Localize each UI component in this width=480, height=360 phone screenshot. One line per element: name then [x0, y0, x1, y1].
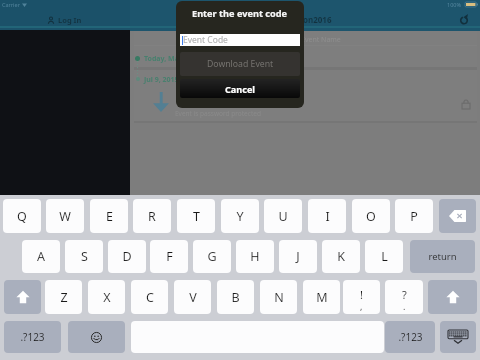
button[interactable]: S: [65, 240, 103, 273]
staticText: O: [366, 208, 376, 225]
button[interactable]: R: [133, 199, 171, 233]
button[interactable]: Log In: [48, 15, 82, 25]
button[interactable]: D: [108, 240, 146, 273]
button[interactable]: Refresh: [456, 11, 472, 26]
staticText: R: [148, 208, 156, 225]
staticText: .?123: [398, 330, 423, 344]
button[interactable]: Download Event: [180, 52, 300, 76]
staticText: Z: [60, 289, 68, 306]
button[interactable]: I: [308, 199, 346, 233]
staticText: Event Name: [301, 35, 341, 45]
staticText: Event Code: [183, 34, 228, 46]
staticText: X: [103, 289, 111, 306]
staticText: return: [428, 250, 457, 263]
staticText: P: [410, 208, 418, 225]
staticText: 100%: [447, 1, 462, 8]
button[interactable]: Cancel: [180, 79, 300, 98]
button[interactable]: !: [343, 280, 380, 314]
button[interactable]: W: [46, 199, 84, 233]
button[interactable]: T: [177, 199, 215, 233]
staticText: Enter the event code: [192, 7, 288, 20]
button[interactable]: .?123: [385, 321, 435, 353]
staticText: Log In: [58, 15, 82, 25]
button[interactable]: K: [322, 240, 360, 273]
button[interactable]: U: [264, 199, 302, 233]
button[interactable]: C: [131, 280, 168, 314]
staticText: J: [296, 248, 300, 265]
staticText: Cancel: [225, 83, 256, 95]
button[interactable]: ?: [385, 280, 423, 314]
staticText: T: [193, 208, 200, 225]
staticText: Jul 9, 2015 1: [144, 75, 185, 85]
staticText: G: [207, 248, 217, 265]
button[interactable]: P: [395, 199, 433, 233]
button[interactable]: Y: [221, 199, 259, 233]
staticText: F: [166, 248, 173, 265]
button[interactable]: .?123: [4, 321, 61, 353]
staticText: M: [316, 289, 328, 306]
staticText: E: [106, 208, 113, 225]
staticText: Today, May 2: [144, 54, 189, 64]
staticText: N: [274, 289, 284, 306]
button[interactable]: Shift: [4, 280, 41, 314]
button[interactable]: F: [150, 240, 188, 273]
button[interactable]: E: [90, 199, 128, 233]
staticText: Q: [17, 208, 27, 225]
staticText: Download Event: [207, 58, 274, 70]
staticText: L: [381, 248, 388, 265]
staticText: V: [189, 289, 197, 306]
staticText: A: [37, 248, 45, 265]
button[interactable]: Hide keyboard: [440, 321, 476, 353]
button[interactable]: N: [260, 280, 297, 314]
staticText: D: [122, 248, 132, 265]
button[interactable]: V: [174, 280, 211, 314]
staticText: .: [403, 300, 406, 312]
staticText: C: [146, 289, 154, 306]
staticText: S: [81, 248, 88, 265]
button[interactable]: M: [303, 280, 340, 314]
button[interactable]: B: [217, 280, 254, 314]
button[interactable]: Z: [45, 280, 82, 314]
staticText: U: [278, 208, 288, 225]
staticText: H: [250, 248, 260, 265]
staticText: Y: [236, 208, 244, 225]
button[interactable]: L: [365, 240, 403, 273]
staticText: !: [360, 287, 363, 302]
staticText: ?: [402, 287, 407, 302]
staticText: .?123: [20, 330, 45, 344]
staticText: W: [59, 208, 71, 225]
button[interactable]: Emoji: [68, 321, 125, 353]
button[interactable]: H: [236, 240, 274, 273]
button[interactable]: Backspace: [439, 199, 476, 233]
button[interactable]: A: [22, 240, 60, 273]
button[interactable]: Shift: [428, 280, 477, 314]
button[interactable]: return: [410, 240, 475, 273]
staticText: on2016: [303, 14, 332, 25]
staticText: I: [325, 208, 330, 225]
button[interactable]: G: [193, 240, 231, 273]
button[interactable]: Event Code: [180, 34, 300, 46]
button[interactable]: O: [352, 199, 390, 233]
staticText: K: [337, 248, 345, 265]
staticText: B: [231, 289, 240, 306]
staticText: Carrier: [2, 1, 20, 8]
button[interactable]: J: [279, 240, 317, 273]
button[interactable]: Q: [3, 199, 41, 233]
staticText: ,: [360, 300, 363, 312]
button[interactable]: X: [88, 280, 125, 314]
